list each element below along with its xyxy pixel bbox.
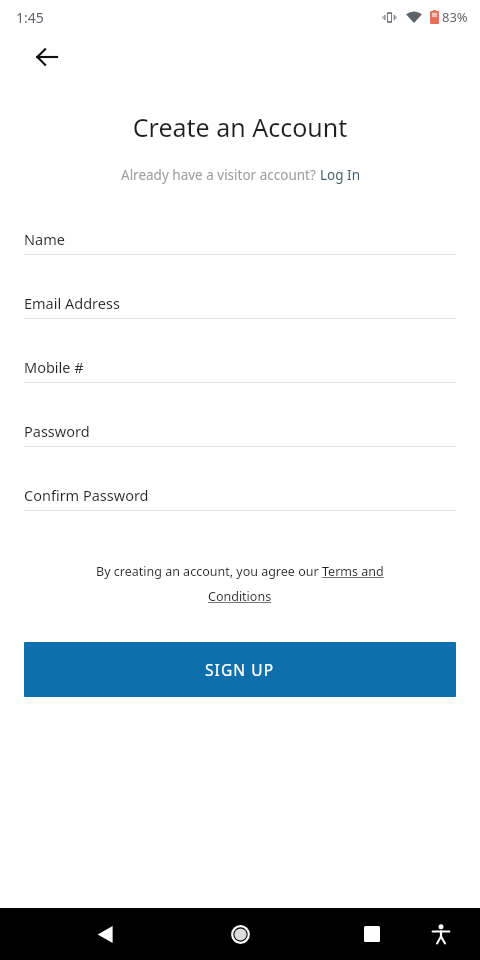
- staticText: Log In: [320, 166, 360, 184]
- staticText: Email Address: [24, 293, 120, 313]
- staticText: SIGN UP: [205, 659, 275, 680]
- button[interactable]: Back: [23, 34, 71, 80]
- staticText: 83%: [442, 8, 468, 26]
- staticText: Create an Account: [0, 110, 480, 144]
- staticText: Password: [24, 421, 90, 441]
- staticText: Confirm Password: [24, 485, 149, 505]
- button[interactable]: SIGN UP: [24, 642, 456, 697]
- button[interactable]: Conditions: [208, 588, 272, 605]
- staticText: Mobile #: [24, 357, 84, 377]
- button[interactable]: Terms and: [322, 563, 384, 580]
- button[interactable]: Email Address: [24, 287, 456, 319]
- staticText: Name: [24, 229, 65, 249]
- staticText: 1:45: [16, 8, 44, 27]
- button[interactable]: Accessibility: [419, 912, 463, 956]
- button[interactable]: Log In: [320, 166, 360, 184]
- button[interactable]: Confirm Password: [24, 479, 456, 511]
- button[interactable]: Home: [216, 910, 264, 958]
- button[interactable]: Recent apps: [348, 910, 396, 958]
- button[interactable]: Mobile #: [24, 351, 456, 383]
- staticText: Already have a visitor account?: [121, 166, 320, 184]
- button[interactable]: Name: [24, 223, 456, 255]
- staticText: By creating an account, you agree our: [96, 563, 322, 580]
- button[interactable]: Password: [24, 415, 456, 447]
- button[interactable]: Back: [81, 910, 129, 958]
